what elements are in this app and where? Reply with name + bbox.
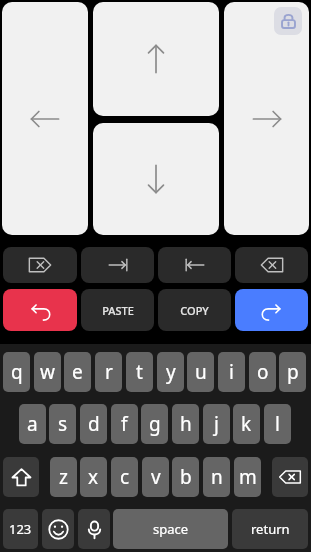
button[interactable]: g: [141, 404, 168, 444]
staticText: a: [27, 411, 38, 437]
button[interactable]: o: [249, 352, 276, 392]
button[interactable]: PASTE: [81, 289, 154, 331]
staticText: u: [195, 359, 207, 385]
button[interactable]: return: [232, 509, 308, 549]
button[interactable]: u: [187, 352, 214, 392]
button[interactable]: Back tab: [158, 247, 231, 283]
staticText: b: [180, 464, 192, 490]
staticText: s: [58, 411, 68, 437]
button[interactable]: space: [113, 509, 228, 549]
staticText: c: [120, 464, 130, 490]
button[interactable]: Up: [93, 2, 219, 116]
button[interactable]: Delete forward: [3, 247, 77, 283]
button[interactable]: r: [95, 352, 122, 392]
button[interactable]: w: [34, 352, 61, 392]
button[interactable]: Shift: [3, 457, 39, 497]
button[interactable]: Delete: [235, 247, 308, 283]
staticText: h: [180, 411, 192, 437]
staticText: w: [40, 359, 55, 385]
staticText: t: [136, 359, 143, 385]
button[interactable]: k: [233, 404, 260, 444]
button[interactable]: Backspace: [272, 457, 308, 497]
button[interactable]: f: [111, 404, 138, 444]
staticText: return: [251, 520, 290, 538]
staticText: i: [229, 359, 234, 385]
staticText: k: [241, 411, 252, 437]
button[interactable]: Voice input: [78, 509, 110, 549]
button[interactable]: a: [19, 404, 46, 444]
button[interactable]: Tab: [81, 247, 154, 283]
staticText: v: [151, 464, 161, 490]
button[interactable]: Undo: [3, 289, 77, 331]
button[interactable]: y: [157, 352, 184, 392]
button[interactable]: h: [172, 404, 199, 444]
button[interactable]: q: [3, 352, 30, 392]
button[interactable]: e: [64, 352, 91, 392]
button[interactable]: j: [203, 404, 230, 444]
button[interactable]: p: [279, 352, 306, 392]
staticText: q: [11, 359, 23, 385]
staticText: p: [287, 359, 299, 385]
button[interactable]: l: [264, 404, 291, 444]
staticText: g: [149, 411, 161, 437]
staticText: z: [59, 464, 68, 490]
staticText: 123: [9, 520, 32, 538]
staticText: space: [153, 520, 189, 538]
staticText: PASTE: [102, 303, 134, 318]
staticText: x: [88, 464, 99, 490]
button[interactable]: c: [111, 457, 138, 497]
staticText: r: [105, 359, 113, 385]
button[interactable]: Lock: [274, 7, 302, 35]
staticText: e: [72, 359, 83, 385]
button[interactable]: Left: [2, 2, 88, 235]
staticText: j: [214, 411, 219, 437]
button[interactable]: i: [218, 352, 245, 392]
button[interactable]: n: [203, 457, 230, 497]
button[interactable]: Emoji: [42, 509, 74, 549]
button[interactable]: t: [126, 352, 153, 392]
staticText: l: [275, 411, 280, 437]
staticText: y: [166, 359, 176, 385]
button[interactable]: x: [80, 457, 107, 497]
button[interactable]: Redo: [235, 289, 308, 331]
button[interactable]: COPY: [158, 289, 231, 331]
staticText: m: [239, 464, 257, 490]
button[interactable]: Right: [224, 2, 309, 235]
button[interactable]: v: [142, 457, 169, 497]
button[interactable]: s: [49, 404, 76, 444]
staticText: o: [257, 359, 269, 385]
button[interactable]: m: [234, 457, 261, 497]
button[interactable]: d: [80, 404, 107, 444]
staticText: COPY: [180, 303, 209, 318]
button[interactable]: 123: [3, 509, 38, 549]
button[interactable]: b: [172, 457, 199, 497]
button[interactable]: Down: [93, 123, 219, 235]
button[interactable]: z: [50, 457, 77, 497]
staticText: n: [211, 464, 223, 490]
staticText: f: [121, 411, 128, 437]
staticText: d: [88, 411, 100, 437]
